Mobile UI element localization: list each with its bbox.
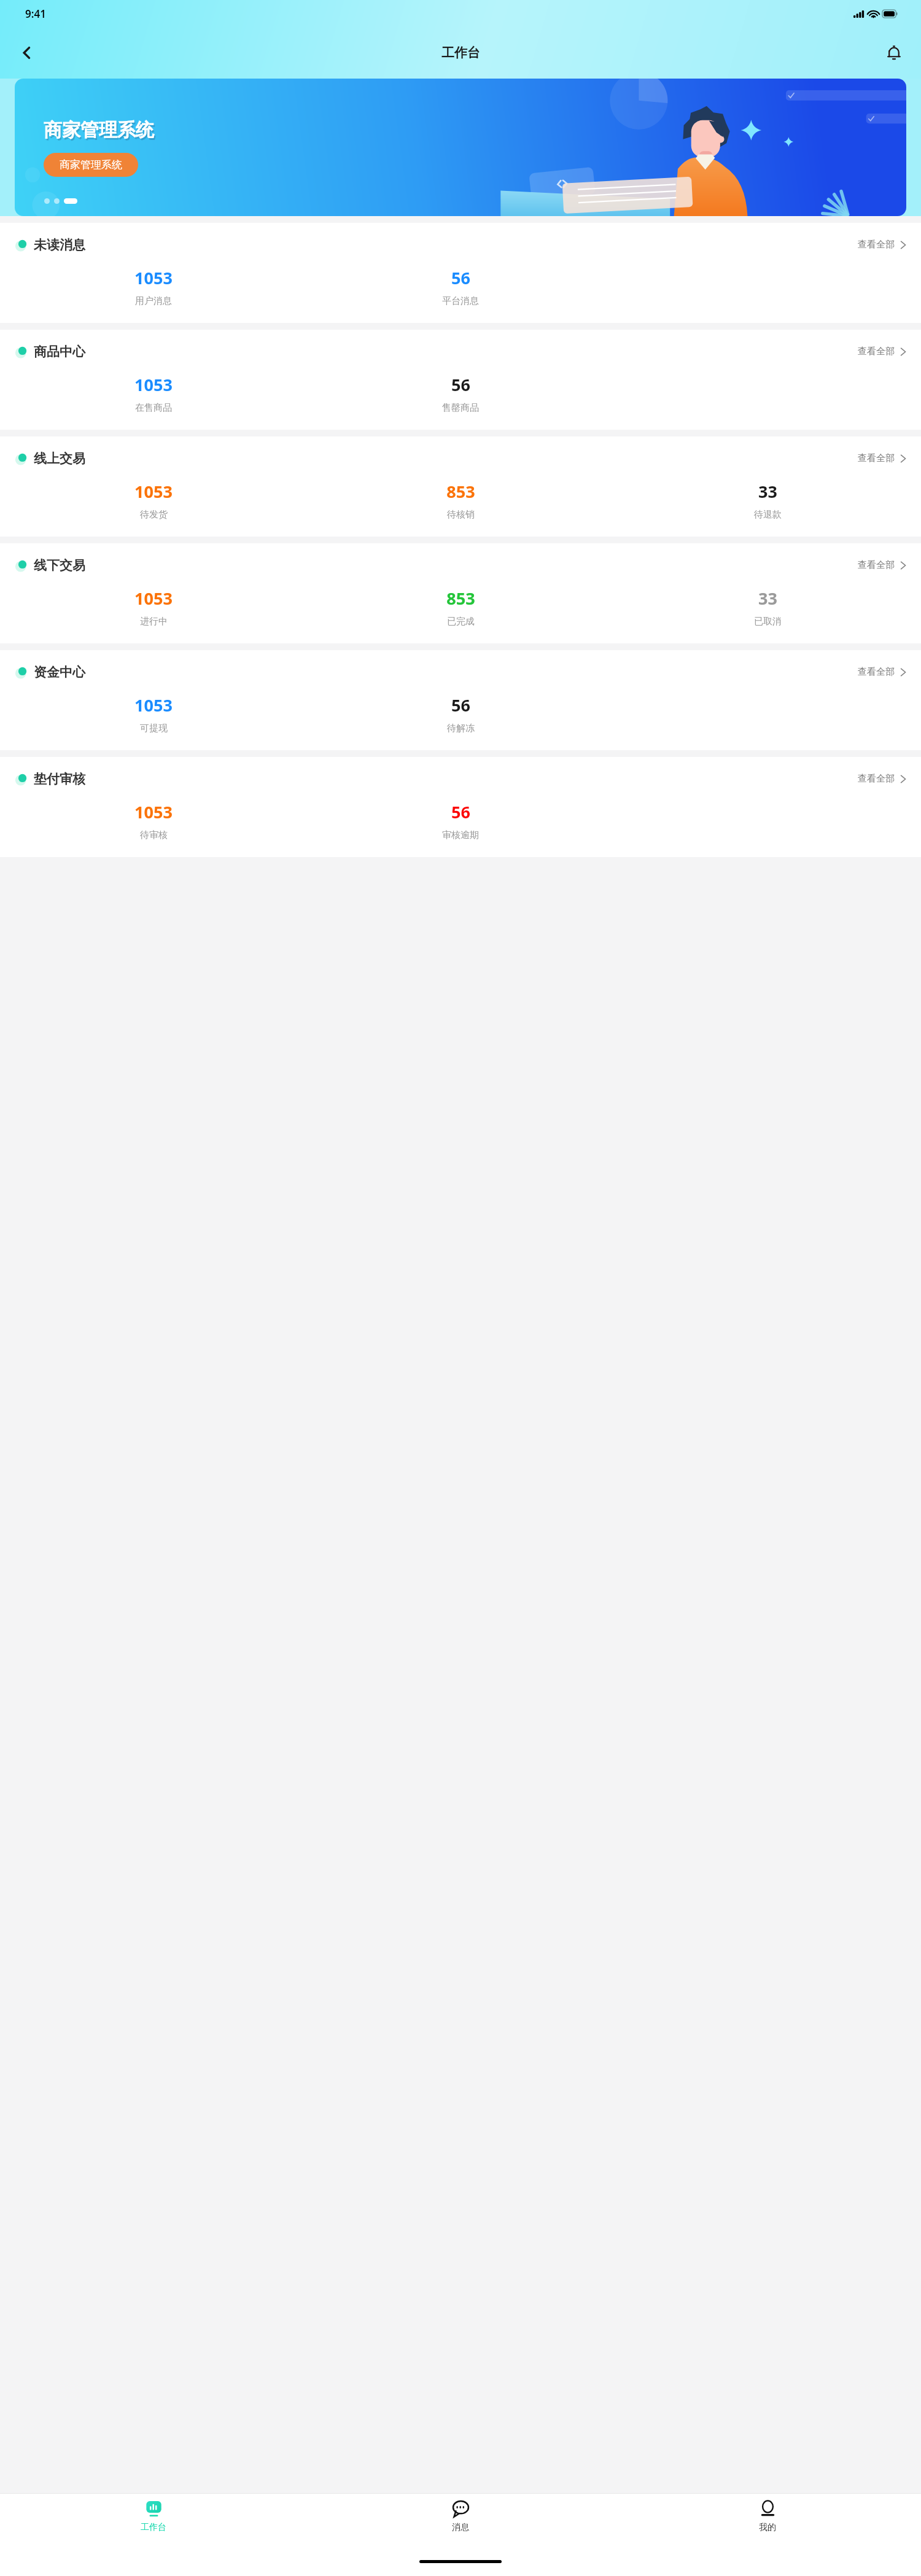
- button[interactable]: 56: [307, 373, 614, 414]
- button[interactable]: Notifications: [879, 38, 909, 68]
- button[interactable]: 线上交易: [0, 436, 921, 537]
- staticText: 资金中心: [34, 664, 85, 680]
- staticText: 工作台: [441, 45, 480, 61]
- staticText: 9:41: [25, 7, 46, 21]
- staticText: 线上交易: [34, 451, 85, 467]
- button[interactable]: 1053: [0, 694, 307, 734]
- staticText: 商家管理系统: [60, 158, 122, 171]
- button[interactable]: 消息: [307, 2494, 614, 2547]
- staticText: 查看全部: [858, 452, 895, 464]
- staticText: 工作台: [141, 2522, 166, 2533]
- staticText: 售罄商品: [442, 402, 479, 414]
- staticText: 1053: [134, 694, 173, 716]
- staticText: 商品中心: [34, 344, 85, 360]
- staticText: 1053: [134, 801, 173, 823]
- button[interactable]: 查看全部: [858, 343, 906, 360]
- staticText: 待退款: [754, 509, 782, 521]
- staticText: 查看全部: [858, 559, 895, 571]
- staticText: 查看全部: [858, 239, 895, 250]
- staticText: 可提现: [140, 723, 168, 734]
- button[interactable]: 56: [307, 694, 614, 734]
- staticText: 查看全部: [858, 346, 895, 357]
- button[interactable]: Back: [12, 38, 42, 68]
- button[interactable]: 1053: [0, 801, 307, 841]
- staticText: 已完成: [447, 616, 475, 627]
- staticText: 用户消息: [135, 295, 172, 307]
- button[interactable]: 资金中心: [0, 650, 921, 750]
- button[interactable]: 垫付审核: [0, 757, 921, 857]
- button[interactable]: 商品中心: [0, 330, 921, 430]
- button[interactable]: 56: [307, 266, 614, 307]
- staticText: 33: [758, 587, 777, 610]
- button[interactable]: 56: [307, 801, 614, 841]
- staticText: 在售商品: [135, 402, 172, 414]
- button[interactable]: 查看全部: [858, 664, 906, 680]
- staticText: 853: [446, 587, 475, 610]
- button[interactable]: 查看全部: [858, 450, 906, 467]
- button[interactable]: 商家管理系统: [44, 153, 138, 177]
- button[interactable]: 33: [614, 480, 921, 521]
- staticText: 待审核: [140, 829, 168, 841]
- staticText: 消息: [452, 2522, 469, 2533]
- staticText: 查看全部: [858, 773, 895, 785]
- button[interactable]: 工作台: [0, 2494, 307, 2547]
- staticText: 33: [758, 480, 777, 503]
- staticText: 56: [451, 801, 470, 823]
- button[interactable]: 33: [614, 587, 921, 627]
- staticText: 垫付审核: [34, 771, 85, 787]
- staticText: 查看全部: [858, 666, 895, 678]
- staticText: 853: [446, 480, 475, 503]
- staticText: 1053: [134, 587, 173, 610]
- button[interactable]: 853: [307, 587, 614, 627]
- staticText: 商家管理系统: [44, 118, 154, 142]
- staticText: 1053: [134, 266, 173, 289]
- button[interactable]: 1053: [0, 266, 307, 307]
- staticText: 56: [451, 373, 470, 396]
- staticText: 未读消息: [34, 237, 85, 253]
- staticText: 审核逾期: [442, 829, 479, 841]
- button[interactable]: 线下交易: [0, 543, 921, 643]
- staticText: 进行中: [140, 616, 168, 627]
- button[interactable]: 查看全部: [858, 770, 906, 787]
- staticText: 1053: [134, 480, 173, 503]
- staticText: 我的: [759, 2522, 776, 2533]
- button[interactable]: 1053: [0, 587, 307, 627]
- staticText: 56: [451, 694, 470, 716]
- button[interactable]: 查看全部: [858, 236, 906, 253]
- staticText: 线下交易: [34, 557, 85, 573]
- button[interactable]: 查看全部: [858, 557, 906, 573]
- button[interactable]: 853: [307, 480, 614, 521]
- staticText: 商家管理系统: [45, 120, 155, 144]
- button[interactable]: 1053: [0, 480, 307, 521]
- staticText: 待发货: [140, 509, 168, 521]
- button[interactable]: 1053: [0, 373, 307, 414]
- button[interactable]: 未读消息: [0, 223, 921, 323]
- staticText: 待解冻: [447, 723, 475, 734]
- button[interactable]: 我的: [614, 2494, 921, 2547]
- staticText: 56: [451, 266, 470, 289]
- staticText: 待核销: [447, 509, 475, 521]
- staticText: 已取消: [754, 616, 782, 627]
- staticText: 平台消息: [442, 295, 479, 307]
- button[interactable]: 商家管理系统: [15, 79, 906, 216]
- staticText: 1053: [134, 373, 173, 396]
